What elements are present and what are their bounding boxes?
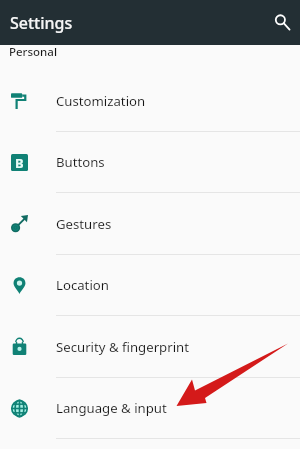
- staticText: Security & fingerprint: [56, 338, 189, 356]
- button[interactable]: B: [0, 132, 300, 193]
- button[interactable]: Search: [266, 7, 298, 39]
- button[interactable]: Location: [0, 255, 300, 316]
- staticText: Gestures: [56, 215, 112, 233]
- staticText: Buttons: [56, 153, 105, 171]
- staticText: Personal: [9, 44, 57, 60]
- staticText: B: [15, 154, 24, 171]
- button[interactable]: Gestures: [0, 193, 300, 255]
- staticText: Location: [56, 276, 109, 294]
- button[interactable]: Language & input: [0, 378, 300, 439]
- button[interactable]: Security & fingerprint: [0, 316, 300, 378]
- button[interactable]: Customization: [0, 70, 300, 132]
- staticText: Customization: [56, 92, 146, 110]
- staticText: Language & input: [56, 399, 167, 417]
- staticText: Settings: [10, 12, 73, 34]
